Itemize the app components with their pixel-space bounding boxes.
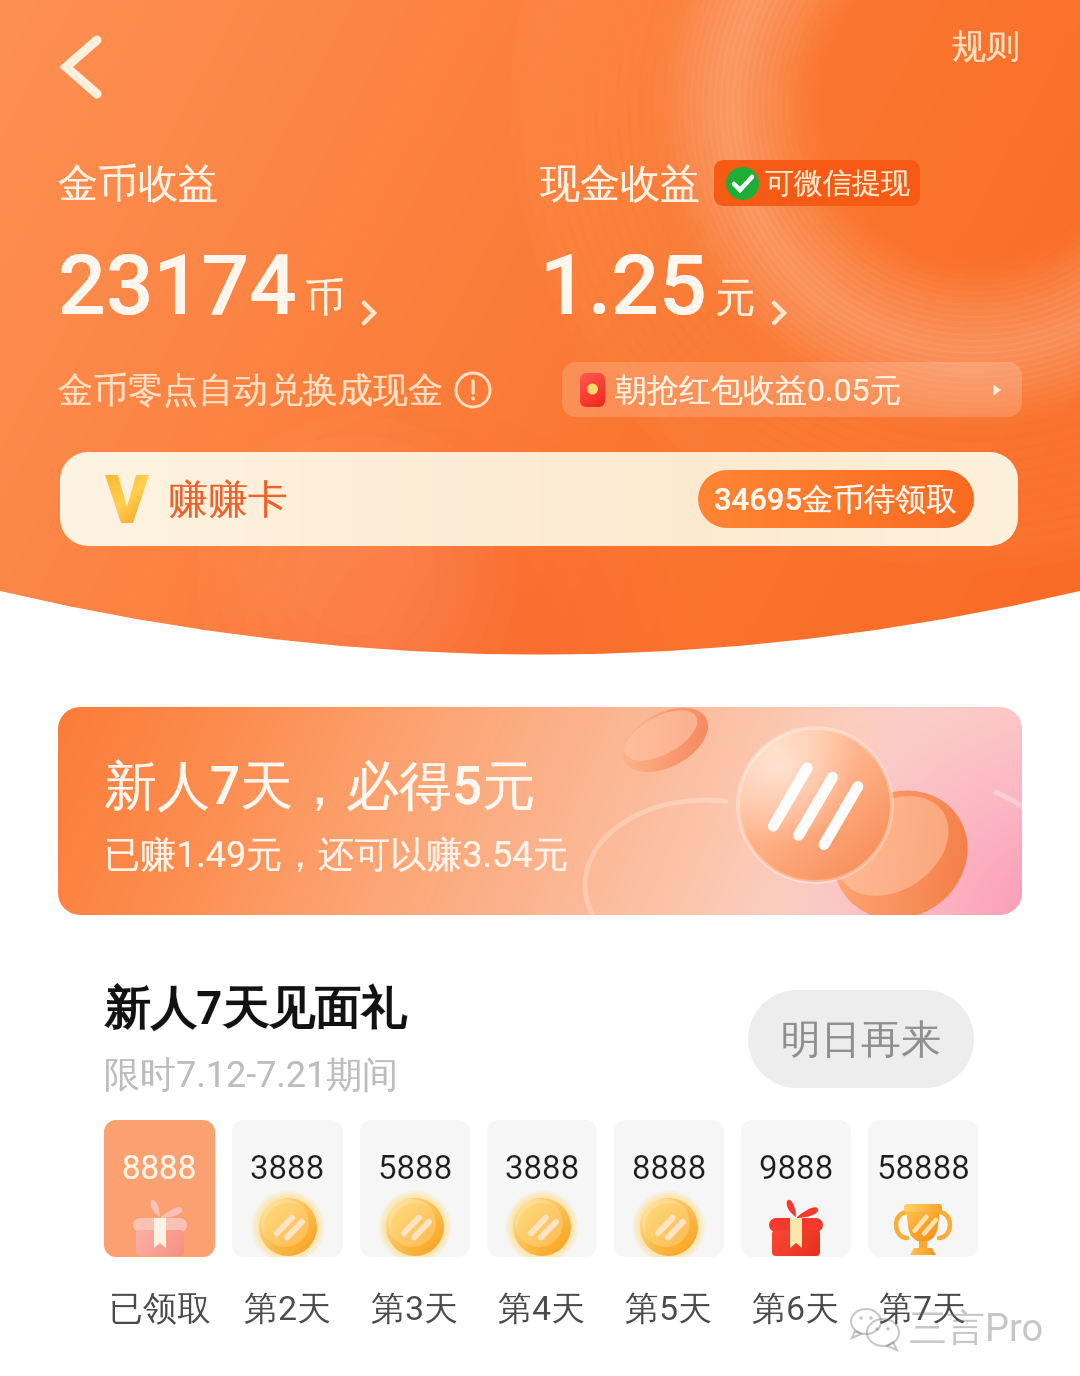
- button[interactable]: 可微信提现: [714, 160, 920, 206]
- staticText: 限时7.12-7.21期间: [104, 1052, 399, 1097]
- button[interactable]: 赚赚卡: [60, 452, 1018, 546]
- staticText: 8888: [122, 1148, 197, 1187]
- staticText: 34695金币待领取: [714, 480, 958, 519]
- button[interactable]: 8888: [104, 1120, 215, 1330]
- staticText: 58888: [877, 1148, 970, 1187]
- staticText: 三言Pro: [909, 1304, 1044, 1352]
- button[interactable]: 5888: [360, 1120, 470, 1330]
- staticText: 8888: [632, 1148, 707, 1187]
- staticText: 已领取: [109, 1287, 211, 1330]
- staticText: 朝抢红包收益0.05元: [615, 370, 902, 410]
- button[interactable]: Back: [47, 28, 119, 92]
- staticText: 第7天: [879, 1287, 967, 1330]
- button[interactable]: 规则: [938, 15, 1034, 78]
- staticText: 第5天: [625, 1287, 713, 1330]
- staticText: 新人7天，必得5元: [104, 753, 536, 820]
- staticText: 赚赚卡: [168, 474, 288, 524]
- staticText: 第6天: [752, 1287, 840, 1330]
- button[interactable]: 34695金币待领取: [698, 470, 974, 528]
- staticText: 已赚1.49元，还可以赚3.54元: [104, 832, 569, 877]
- staticText: 新人7天见面礼: [104, 980, 407, 1038]
- staticText: 金币收益: [58, 158, 218, 208]
- staticText: 23174: [58, 236, 297, 334]
- staticText: 可微信提现: [765, 165, 910, 202]
- staticText: 现金收益: [540, 158, 700, 208]
- button[interactable]: 8888: [614, 1120, 724, 1330]
- button[interactable]: 新人7天，必得5元: [58, 707, 1022, 915]
- button[interactable]: 1.25: [540, 236, 787, 334]
- staticText: 3888: [250, 1148, 325, 1187]
- button[interactable]: 3888: [487, 1120, 597, 1330]
- button[interactable]: 朝抢红包收益0.05元: [562, 362, 1022, 417]
- staticText: 第3天: [371, 1287, 459, 1330]
- staticText: 3888: [505, 1148, 580, 1187]
- button[interactable]: 金币零点自动兑换成现金: [58, 368, 491, 412]
- staticText: 9888: [759, 1148, 834, 1187]
- staticText: 5888: [378, 1148, 453, 1187]
- staticText: 1.25: [540, 236, 707, 334]
- button[interactable]: 明日再来: [748, 990, 974, 1088]
- button[interactable]: 9888: [741, 1120, 851, 1330]
- button[interactable]: 金币收益: [58, 158, 377, 334]
- button[interactable]: 58888: [868, 1120, 978, 1330]
- button[interactable]: 3888: [232, 1120, 343, 1330]
- staticText: 元: [715, 272, 755, 322]
- staticText: 规则: [952, 25, 1020, 68]
- staticText: 金币零点自动兑换成现金: [58, 368, 443, 412]
- staticText: 币: [305, 272, 345, 322]
- staticText: 第4天: [498, 1287, 586, 1330]
- staticText: 明日再来: [781, 1014, 941, 1064]
- staticText: 第2天: [244, 1287, 332, 1330]
